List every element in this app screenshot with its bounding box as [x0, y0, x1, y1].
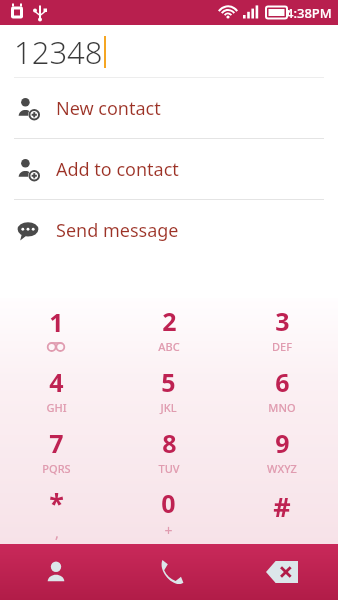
staticText: *	[49, 485, 64, 522]
button[interactable]: 5	[112, 359, 225, 420]
staticText: 4	[49, 365, 64, 399]
staticText: JKL	[160, 400, 177, 415]
button[interactable]: Call	[112, 544, 225, 600]
button[interactable]: New contact	[0, 78, 338, 138]
button[interactable]: 9	[225, 420, 338, 482]
staticText: 7	[49, 426, 64, 460]
button[interactable]: 1	[0, 298, 112, 359]
staticText: GHI	[46, 400, 67, 415]
button[interactable]: 6	[225, 359, 338, 420]
staticText: WXYZ	[267, 461, 297, 476]
button[interactable]: Backspace	[225, 544, 338, 600]
staticText: Send message	[56, 218, 179, 243]
button[interactable]: 8	[112, 420, 225, 482]
staticText: 4:38PM	[286, 4, 332, 22]
button[interactable]: Send message	[0, 200, 338, 260]
button[interactable]: *	[0, 482, 112, 544]
button[interactable]: 7	[0, 420, 112, 482]
staticText: #	[273, 488, 291, 525]
button[interactable]: #	[225, 482, 338, 544]
staticText: DEF	[272, 339, 292, 354]
staticText: 9	[275, 426, 290, 460]
staticText: 8	[162, 426, 177, 460]
staticText: 6	[275, 365, 290, 399]
button[interactable]: Contacts	[0, 544, 112, 600]
staticText: New contact	[56, 96, 161, 121]
staticText: 12348	[14, 31, 103, 73]
staticText: 1	[49, 305, 64, 339]
button[interactable]: 12348	[0, 25, 338, 78]
staticText: ABC	[158, 339, 180, 354]
button[interactable]: Add to contact	[0, 139, 338, 199]
staticText: ,	[55, 523, 59, 542]
staticText: Add to contact	[56, 157, 179, 182]
button[interactable]: 3	[225, 298, 338, 359]
staticText: TUV	[158, 461, 180, 476]
button[interactable]: 4	[0, 359, 112, 420]
staticText: PQRS	[42, 461, 71, 476]
staticText: 2	[162, 304, 177, 338]
staticText: 5	[161, 365, 176, 399]
staticText: MNO	[268, 400, 296, 415]
staticText: 3	[275, 304, 290, 338]
button[interactable]: 0	[112, 482, 225, 544]
staticText: +	[164, 521, 173, 540]
staticText: 0	[161, 486, 176, 520]
button[interactable]: 2	[112, 298, 225, 359]
